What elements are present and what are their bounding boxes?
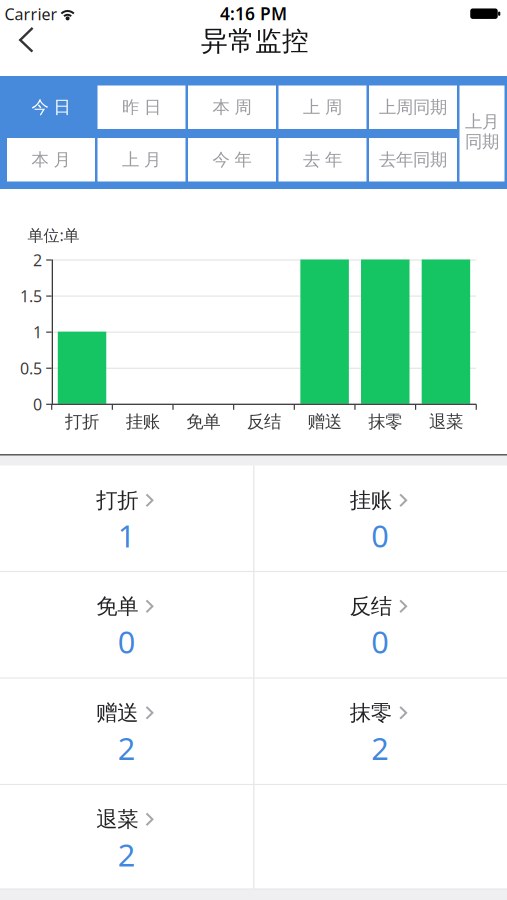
- staticText: 2: [118, 834, 136, 875]
- staticText: 0: [33, 394, 42, 415]
- button[interactable]: 去 年: [278, 138, 366, 181]
- button[interactable]: 赠送: [0, 678, 253, 784]
- staticText: 昨 日: [122, 97, 161, 118]
- button[interactable]: 上周同期: [369, 85, 457, 129]
- button[interactable]: 上月: [459, 85, 504, 181]
- staticText: 今 年: [212, 149, 251, 170]
- staticText: 0.5: [20, 358, 42, 379]
- staticText: 上周同期: [379, 97, 447, 118]
- button[interactable]: 挂账: [254, 465, 507, 571]
- staticText: 去年同期: [379, 149, 447, 170]
- staticText: 免单: [96, 593, 138, 619]
- staticText: 抹零: [350, 700, 392, 726]
- staticText: 异常监控: [201, 25, 309, 57]
- button[interactable]: Back: [4, 18, 48, 62]
- staticText: 1: [118, 515, 136, 556]
- button[interactable]: 本 周: [188, 85, 276, 129]
- staticText: 1.5: [20, 285, 42, 307]
- staticText: 2: [33, 249, 42, 271]
- staticText: 赠送: [96, 700, 138, 726]
- staticText: 同期: [465, 131, 499, 152]
- button[interactable]: 反结: [254, 571, 507, 678]
- staticText: 本 周: [212, 97, 251, 118]
- staticText: 抹零: [368, 411, 402, 432]
- staticText: 反结: [247, 411, 281, 432]
- staticText: 去 年: [303, 149, 342, 170]
- staticText: 赠送: [308, 411, 342, 432]
- staticText: 打折: [65, 411, 99, 432]
- staticText: 退菜: [429, 411, 463, 432]
- button[interactable]: 上 月: [97, 138, 185, 181]
- button[interactable]: 本 月: [7, 138, 95, 181]
- staticText: 0: [371, 621, 389, 662]
- button[interactable]: 退菜: [0, 784, 253, 889]
- staticText: 上 周: [303, 97, 342, 118]
- staticText: 退菜: [96, 806, 138, 832]
- staticText: 2: [371, 728, 389, 768]
- button[interactable]: 昨 日: [97, 85, 185, 129]
- staticText: 单位:单: [27, 224, 79, 246]
- staticText: 挂账: [350, 487, 392, 513]
- staticText: 挂账: [126, 411, 160, 432]
- staticText: 4:16 PM: [220, 2, 287, 25]
- button[interactable]: 上 周: [278, 85, 366, 129]
- staticText: 上 月: [122, 149, 161, 170]
- staticText: Carrier: [4, 3, 57, 25]
- staticText: 本 月: [31, 149, 70, 170]
- staticText: 1: [33, 321, 42, 343]
- staticText: 0: [371, 515, 389, 556]
- staticText: 今 日: [31, 97, 70, 118]
- button[interactable]: 去年同期: [369, 138, 457, 181]
- button[interactable]: 今 日: [7, 85, 95, 129]
- button[interactable]: 今 年: [188, 138, 276, 181]
- button[interactable]: 免单: [0, 571, 253, 678]
- staticText: 免单: [186, 411, 220, 432]
- button[interactable]: 抹零: [254, 678, 507, 784]
- staticText: 0: [118, 621, 136, 662]
- staticText: 反结: [350, 593, 392, 619]
- staticText: 上月: [465, 111, 499, 132]
- staticText: 2: [118, 728, 136, 768]
- staticText: 打折: [96, 487, 138, 513]
- button[interactable]: 打折: [0, 465, 253, 571]
